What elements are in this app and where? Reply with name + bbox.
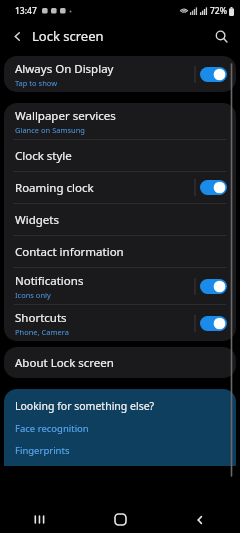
staticText: Lock screen xyxy=(32,27,104,45)
button[interactable]: Always On Display toggle xyxy=(200,67,227,82)
staticText: Always On Display xyxy=(15,61,114,77)
button[interactable]: About Lock screen xyxy=(4,347,236,378)
button[interactable]: Shortcuts toggle xyxy=(200,316,227,331)
staticText: Shortcuts xyxy=(15,310,67,326)
staticText: Phone, Camera xyxy=(15,327,69,337)
button[interactable]: Search xyxy=(209,24,233,48)
staticText: Widgets xyxy=(15,212,59,228)
staticText: Face recognition xyxy=(15,422,89,435)
button[interactable]: Clock style xyxy=(4,140,236,171)
staticText: 72% xyxy=(210,5,227,17)
button[interactable]: Widgets xyxy=(4,204,236,235)
staticText: Wallpaper services xyxy=(15,108,116,124)
button[interactable]: Fingerprints xyxy=(4,443,236,458)
button[interactable]: Home xyxy=(80,506,160,533)
staticText: Icons only xyxy=(15,290,51,300)
button[interactable]: Back xyxy=(160,506,240,533)
staticText: About Lock screen xyxy=(15,355,114,371)
button[interactable]: Notifications xyxy=(4,268,236,304)
button[interactable]: Roaming clock xyxy=(4,172,236,203)
button[interactable]: Contact information xyxy=(4,236,236,267)
staticText: Clock style xyxy=(15,148,72,164)
staticText: 13:47 xyxy=(15,5,37,17)
button[interactable]: Recents xyxy=(0,506,80,533)
button[interactable]: Wallpaper services xyxy=(4,103,236,139)
staticText: Roaming clock xyxy=(15,180,94,196)
staticText: Contact information xyxy=(15,244,124,260)
button[interactable]: Roaming clock toggle xyxy=(200,180,227,195)
staticText: Notifications xyxy=(15,273,84,289)
button[interactable]: Back xyxy=(6,25,28,47)
staticText: Tap to show xyxy=(15,78,58,88)
button[interactable]: Always On Display xyxy=(4,56,236,92)
staticText: Glance on Samsung xyxy=(15,125,85,135)
button[interactable]: Face recognition xyxy=(4,421,236,436)
staticText: Fingerprints xyxy=(15,444,70,457)
staticText: Looking for something else? xyxy=(15,399,155,413)
button[interactable]: Notifications toggle xyxy=(200,279,227,294)
button[interactable]: Shortcuts xyxy=(4,305,236,341)
